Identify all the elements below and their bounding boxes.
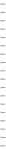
button[interactable]	[0, 83, 6, 92]
button[interactable]	[0, 58, 6, 67]
button[interactable]	[0, 17, 6, 25]
button[interactable]	[0, 100, 6, 108]
button[interactable]	[0, 8, 6, 17]
button[interactable]	[0, 133, 6, 142]
button[interactable]	[0, 117, 6, 125]
button[interactable]	[0, 125, 6, 133]
button[interactable]	[0, 75, 6, 83]
button[interactable]	[0, 50, 6, 58]
button[interactable]	[0, 33, 6, 42]
button[interactable]	[0, 25, 6, 33]
button[interactable]	[0, 108, 6, 117]
button[interactable]	[0, 142, 6, 150]
button[interactable]	[0, 0, 6, 8]
button[interactable]	[0, 92, 6, 100]
button[interactable]	[0, 42, 6, 50]
button[interactable]	[0, 67, 6, 75]
